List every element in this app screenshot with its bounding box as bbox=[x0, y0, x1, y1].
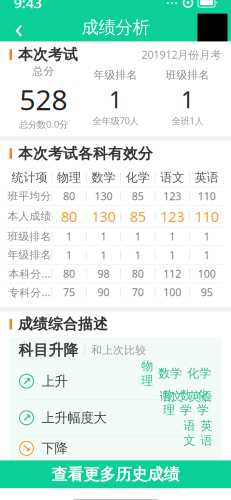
staticText: 全年级70人 bbox=[92, 114, 138, 127]
staticText: 130 bbox=[91, 207, 115, 226]
staticText: 98 bbox=[97, 266, 109, 281]
staticText: 90 bbox=[97, 285, 109, 299]
staticText: 100 bbox=[163, 285, 181, 299]
staticText: 班级排名 bbox=[7, 230, 51, 243]
staticText: 和上次比较 bbox=[91, 344, 146, 357]
staticText: 1 bbox=[169, 229, 175, 243]
staticText: 查看更多历史成绩 bbox=[51, 465, 179, 484]
staticText: ↗ bbox=[22, 375, 31, 387]
staticText: 80 bbox=[61, 207, 77, 226]
staticText: ••• bbox=[166, 0, 178, 9]
staticText: 班平均分 bbox=[7, 190, 51, 203]
staticText: 110 bbox=[195, 207, 219, 226]
staticText: 1 bbox=[66, 248, 72, 262]
staticText: 1 bbox=[135, 229, 141, 243]
staticText: 123 bbox=[160, 207, 184, 226]
staticText: 80 bbox=[132, 266, 144, 281]
staticText: 528 bbox=[19, 81, 67, 118]
staticText: 数学 bbox=[158, 366, 182, 381]
staticText: 201912月份月考 bbox=[141, 47, 221, 62]
staticText: 成绩分析 bbox=[81, 17, 149, 38]
staticText: 85 bbox=[132, 189, 144, 203]
button[interactable]: 查看更多历史成绩 bbox=[0, 460, 231, 488]
staticText: 上升幅度大 bbox=[41, 410, 106, 426]
staticText: 全班1人 bbox=[171, 114, 203, 127]
staticText: 数学 bbox=[91, 170, 115, 185]
staticText: 95 bbox=[201, 285, 213, 299]
staticText: 130 bbox=[94, 189, 112, 203]
staticText: 物理 bbox=[163, 388, 175, 417]
staticText: 总分 bbox=[32, 65, 54, 78]
staticText: 下降 bbox=[41, 440, 67, 457]
staticText: 1 bbox=[100, 248, 106, 262]
staticText: 化学 bbox=[197, 388, 209, 417]
staticText: 9:43 bbox=[13, 0, 41, 12]
staticText: 班级排名 bbox=[165, 68, 209, 81]
staticText: 化学 bbox=[187, 366, 211, 381]
staticText: 1 bbox=[181, 84, 194, 114]
staticText: 100 bbox=[198, 266, 216, 281]
staticText: 112 bbox=[163, 266, 181, 281]
staticText: 物理 bbox=[57, 170, 81, 185]
staticText: 80 bbox=[63, 189, 75, 203]
staticText: 化学 bbox=[126, 170, 150, 185]
staticText: 语文 bbox=[160, 170, 184, 185]
staticText: 科目升降 bbox=[18, 341, 78, 359]
staticText: 成绩综合描述 bbox=[18, 315, 108, 333]
staticText: 专科分... bbox=[8, 285, 50, 299]
staticText: 本次考试 bbox=[18, 46, 78, 64]
staticText: 总分数0.0分 bbox=[19, 118, 68, 130]
staticText: ↗ bbox=[22, 412, 31, 424]
staticText: 1 bbox=[100, 229, 106, 243]
staticText: 年级排名 bbox=[93, 68, 137, 81]
staticText: 1 bbox=[66, 229, 72, 243]
staticText: 123 bbox=[163, 189, 181, 203]
staticText: 本次考试各科有效分 bbox=[18, 145, 153, 163]
staticText: 85 bbox=[130, 207, 146, 226]
staticText: 80 bbox=[63, 266, 75, 281]
staticText: 年级排名 bbox=[7, 248, 51, 261]
staticText: 英语 bbox=[188, 389, 212, 404]
staticText: 英语 bbox=[195, 170, 219, 185]
staticText: 英语 bbox=[200, 418, 212, 448]
staticText: 物理 bbox=[141, 359, 153, 388]
staticText: 本人成绩 bbox=[7, 210, 51, 223]
staticText: 数学 bbox=[180, 388, 192, 417]
button[interactable]: Back bbox=[3, 14, 33, 42]
staticText: ‹ bbox=[14, 10, 22, 45]
staticText: 70 bbox=[132, 285, 144, 299]
staticText: ↘ bbox=[22, 442, 31, 454]
staticText: 1 bbox=[204, 229, 210, 243]
staticText: 上升 bbox=[41, 373, 67, 389]
staticText: 1 bbox=[109, 84, 122, 114]
staticText: 110 bbox=[198, 189, 216, 203]
staticText: 1 bbox=[135, 248, 141, 262]
staticText: 语文 bbox=[159, 389, 183, 404]
staticText: 75 bbox=[63, 285, 75, 299]
staticText: 1 bbox=[169, 248, 175, 262]
staticText: 语文 bbox=[183, 418, 195, 448]
staticText: 1 bbox=[204, 248, 210, 262]
staticText: 统计项 bbox=[11, 170, 47, 185]
staticText: 本科分... bbox=[8, 266, 50, 281]
